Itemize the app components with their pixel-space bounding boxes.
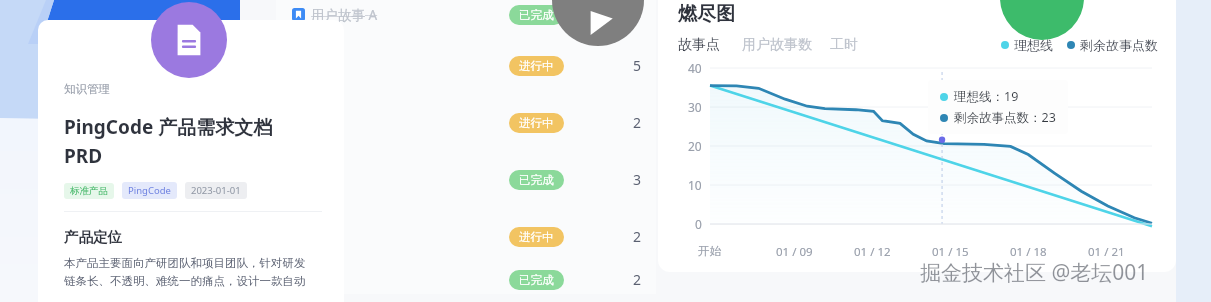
staticText: 20 <box>688 138 702 154</box>
staticText: 2 <box>633 227 642 246</box>
staticText: 燃尽图 <box>678 2 735 26</box>
staticText: 故事点 <box>678 36 720 54</box>
staticText: 用户故事数 <box>742 36 812 54</box>
button[interactable]: 故事 C <box>276 94 656 151</box>
button[interactable]: 理想线 <box>1001 37 1053 53</box>
staticText: PingCode 产品需求文档 <box>64 114 273 140</box>
button[interactable]: 2023-01-01 <box>191 184 241 197</box>
button[interactable]: 故事 D <box>276 151 656 208</box>
button[interactable]: 标准产品 <box>70 185 108 197</box>
button[interactable]: 故事 E <box>276 208 656 265</box>
button[interactable]: 进行中 <box>519 116 554 130</box>
staticText: 已完成 <box>519 173 554 187</box>
staticText: 链条长、不透明、难统一的痛点，设计一款自动 <box>64 274 306 288</box>
staticText: 进行中 <box>519 59 554 73</box>
button[interactable]: Play <box>552 0 644 46</box>
button[interactable]: 已完成 <box>519 273 554 287</box>
button[interactable]: 用户故事数 <box>742 36 812 54</box>
button[interactable]: 故事点 <box>678 36 720 54</box>
staticText: 理想线 <box>1014 37 1053 53</box>
staticText: 0 <box>695 216 702 232</box>
staticText: 2023-01-01 <box>191 184 241 197</box>
staticText: 进行中 <box>519 230 554 244</box>
button[interactable]: 工时 <box>830 36 858 54</box>
staticText: 剩余故事点数 <box>1080 37 1158 53</box>
staticText: 工时 <box>830 36 858 54</box>
staticText: 已完成 <box>519 273 554 287</box>
staticText: 开始 <box>698 244 721 258</box>
staticText: 故事 F <box>292 271 330 289</box>
staticText: 01 / 15 <box>932 244 969 260</box>
staticText: 30 <box>688 99 702 115</box>
button[interactable]: 知识管理 <box>38 20 344 302</box>
staticText: 5 <box>633 56 642 75</box>
staticText: 01 / 09 <box>776 244 813 260</box>
staticText: 3 <box>633 170 642 189</box>
staticText: 3 <box>633 5 642 24</box>
staticText: 知识管理 <box>64 82 110 96</box>
staticText: 理想线：19 <box>954 88 1019 105</box>
button[interactable]: Document <box>151 2 227 78</box>
button[interactable]: 用户故事 A <box>276 0 656 37</box>
button[interactable]: 剩余故事点数 <box>1067 37 1158 53</box>
staticText: 标准产品 <box>70 185 108 197</box>
button[interactable]: Status <box>1000 0 1084 40</box>
staticText: 产品定位 <box>64 228 122 246</box>
staticText: 01 / 18 <box>1010 244 1047 260</box>
button[interactable]: 已完成 <box>519 8 554 22</box>
staticText: 2 <box>633 270 642 289</box>
staticText: 40 <box>688 60 702 76</box>
staticText: 已完成 <box>519 8 554 22</box>
staticText: 10 <box>688 177 702 193</box>
staticText: PingCode <box>128 184 171 197</box>
staticText: 本产品主要面向产研团队和项目团队，针对研发 <box>64 256 306 270</box>
button[interactable]: PingCode <box>128 184 171 197</box>
staticText: 01 / 21 <box>1088 244 1125 260</box>
button[interactable]: 已完成 <box>519 173 554 187</box>
staticText: 01 / 12 <box>854 244 891 260</box>
button[interactable]: 故事 B <box>276 37 656 94</box>
staticText: 剩余故事点数：23 <box>954 109 1056 126</box>
staticText: 2 <box>633 113 642 132</box>
staticText: 掘金技术社区 @老坛001 <box>920 258 1149 287</box>
staticText: 用户故事 A <box>311 6 378 24</box>
button[interactable]: 进行中 <box>519 59 554 73</box>
staticText: PRD <box>64 143 103 169</box>
staticText: 进行中 <box>519 116 554 130</box>
button[interactable]: 故事 F <box>276 265 656 294</box>
button[interactable]: 进行中 <box>519 230 554 244</box>
